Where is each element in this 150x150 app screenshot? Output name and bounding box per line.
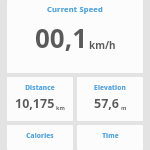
staticText: Time <box>102 131 119 140</box>
staticText: km <box>56 104 65 111</box>
staticText: 10,175 <box>15 95 55 112</box>
staticText: m <box>121 104 127 111</box>
staticText: km/h <box>89 38 116 52</box>
staticText: 00,1 <box>35 20 88 55</box>
button[interactable]: Calories <box>7 125 73 150</box>
button[interactable]: Time <box>77 125 143 150</box>
staticText: Calories <box>26 131 54 140</box>
button[interactable]: Distance <box>7 77 73 121</box>
button[interactable]: Current Speed <box>7 0 143 73</box>
button[interactable]: Elevation <box>77 77 143 121</box>
staticText: Distance <box>25 83 55 92</box>
staticText: 57,6 <box>94 95 120 112</box>
staticText: Elevation <box>94 83 126 92</box>
staticText: Current Speed <box>47 4 103 14</box>
